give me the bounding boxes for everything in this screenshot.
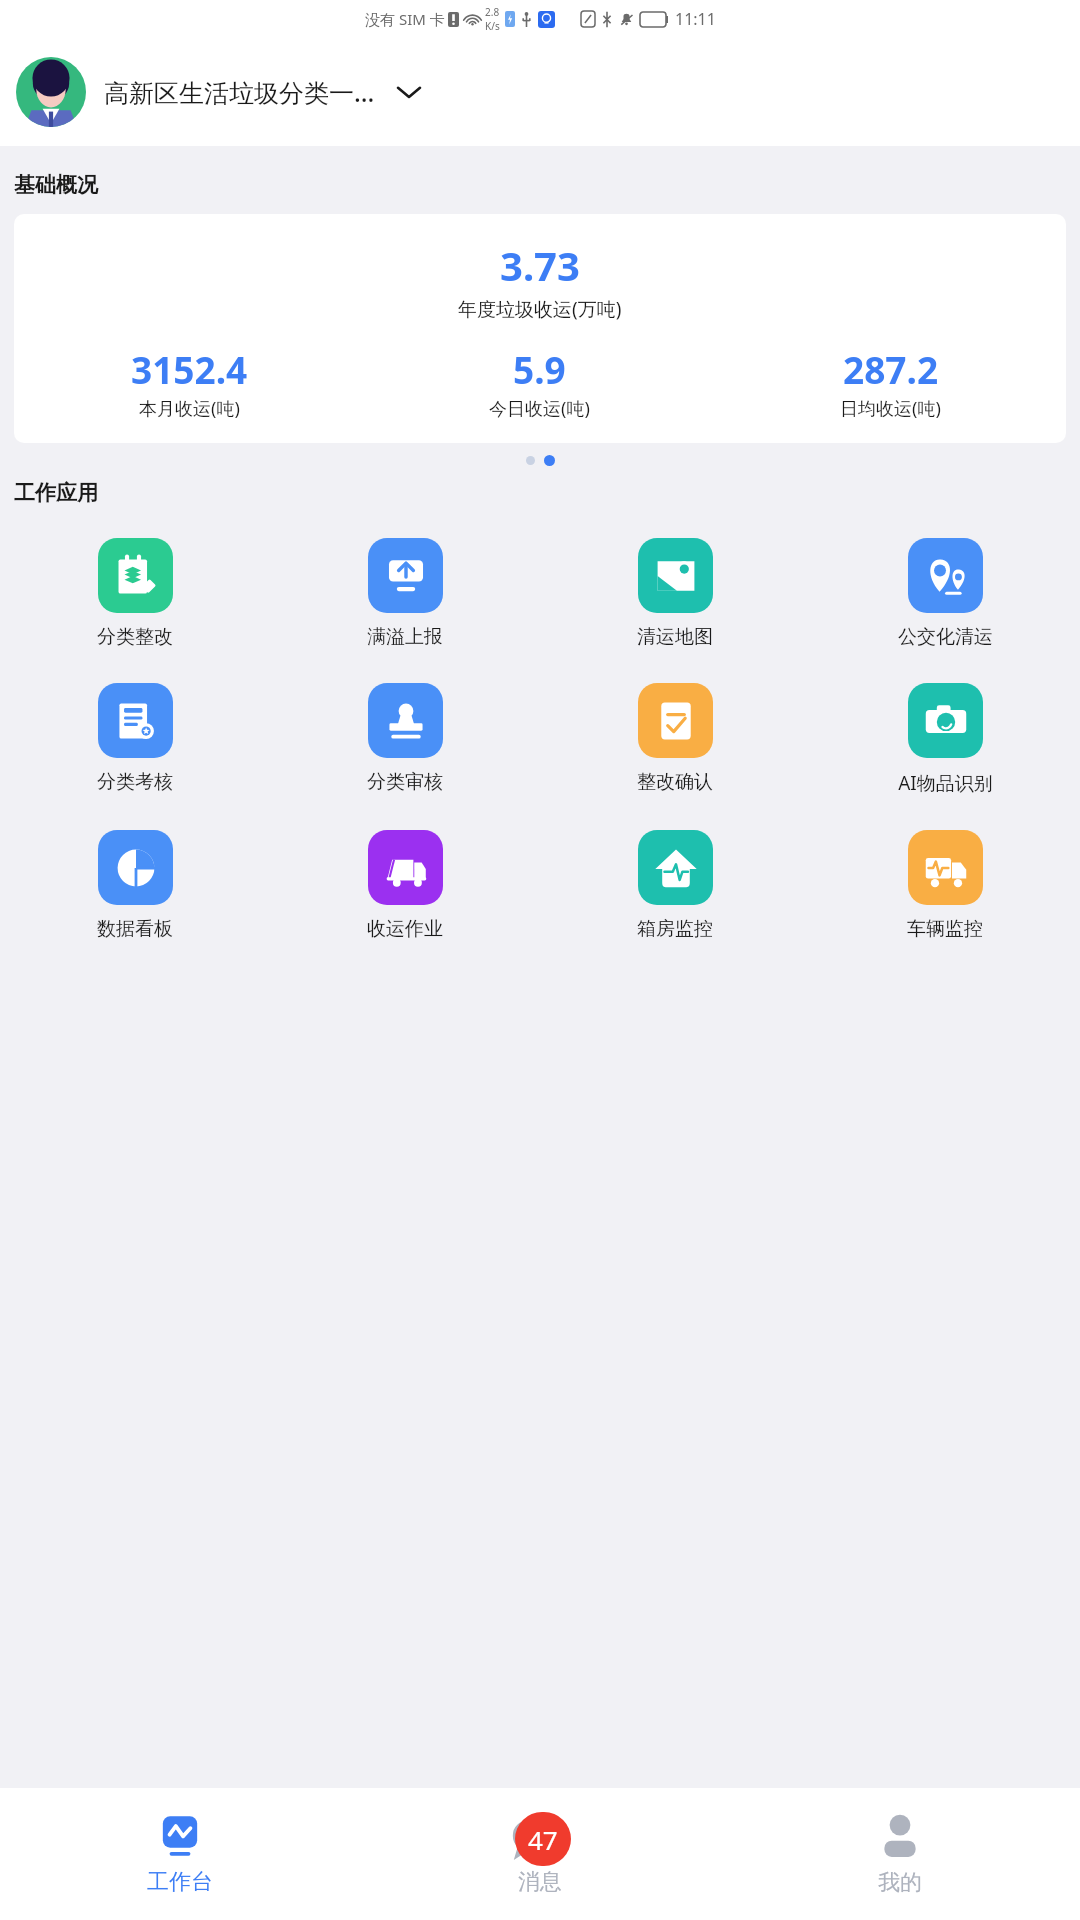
- staticText: 工作应用: [14, 480, 98, 506]
- button[interactable]: 清运地图: [540, 534, 810, 653]
- staticText: 工作台: [147, 1868, 213, 1896]
- button[interactable]: 车辆监控: [810, 826, 1080, 945]
- button[interactable]: 分类整改: [0, 534, 270, 653]
- button[interactable]: 工作台: [0, 1788, 360, 1920]
- staticText: 47: [528, 1822, 558, 1857]
- staticText: 11:11: [675, 8, 716, 30]
- staticText: 2.8: [485, 5, 500, 19]
- staticText: 高新区生活垃圾分类一...: [104, 75, 375, 109]
- staticText: 清运地图: [637, 625, 713, 649]
- button[interactable]: 切换组织: [389, 72, 429, 112]
- staticText: 日均收运(吨): [840, 396, 941, 421]
- staticText: 3.73: [500, 238, 580, 292]
- staticText: 数据看板: [97, 917, 173, 941]
- staticText: 分类考核: [97, 770, 173, 794]
- staticText: 整改确认: [637, 770, 713, 794]
- staticText: 满溢上报: [367, 625, 443, 649]
- staticText: 3152.4: [131, 344, 248, 394]
- button[interactable]: 箱房监控: [540, 826, 810, 945]
- staticText: 年度垃圾收运(万吨): [458, 296, 622, 322]
- button[interactable]: 数据看板: [0, 826, 270, 945]
- staticText: 没有 SIM 卡: [365, 9, 445, 29]
- button[interactable]: 整改确认: [540, 679, 810, 798]
- button[interactable]: 我的: [720, 1788, 1080, 1920]
- button[interactable]: 满溢上报: [270, 534, 540, 653]
- staticText: 公交化清运: [898, 625, 993, 649]
- staticText: 5.9: [513, 344, 566, 394]
- staticText: 消息: [518, 1868, 562, 1896]
- staticText: 分类审核: [367, 770, 443, 794]
- button[interactable]: 47: [360, 1788, 720, 1920]
- staticText: 基础概况: [14, 172, 98, 198]
- staticText: 分类整改: [97, 625, 173, 649]
- staticText: 车辆监控: [907, 917, 983, 941]
- staticText: 287.2: [843, 344, 939, 394]
- staticText: 本月收运(吨): [139, 396, 240, 421]
- button[interactable]: 分类考核: [0, 679, 270, 798]
- staticText: 今日收运(吨): [489, 396, 590, 421]
- button[interactable]: 公交化清运: [810, 534, 1080, 653]
- button[interactable]: 分类审核: [270, 679, 540, 798]
- staticText: 收运作业: [367, 917, 443, 941]
- button[interactable]: 收运作业: [270, 826, 540, 945]
- staticText: 我的: [878, 1869, 922, 1897]
- button[interactable]: AI物品识别: [810, 679, 1080, 800]
- staticText: K/s: [485, 19, 500, 33]
- button[interactable]: 3.73: [14, 214, 1066, 443]
- staticText: AI物品识别: [898, 770, 993, 796]
- staticText: 箱房监控: [637, 917, 713, 941]
